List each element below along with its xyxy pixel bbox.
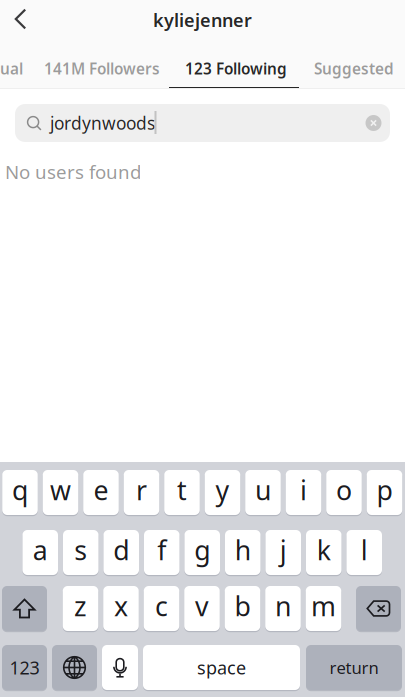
button[interactable]: m [306,586,341,632]
staticText: o [336,472,352,508]
button[interactable]: Next keyboard [52,645,97,691]
button[interactable]: j [265,530,301,576]
staticText: i [300,472,307,508]
button[interactable]: h [225,530,260,576]
staticText: q [12,472,28,508]
button[interactable]: 123 Following [185,45,287,88]
button[interactable]: k [306,530,341,576]
button[interactable]: g [184,530,220,576]
staticText: z [74,588,87,624]
staticText: p [376,472,392,508]
staticText: return [329,656,378,679]
button[interactable]: i [286,470,321,516]
button[interactable]: d [103,530,139,576]
staticText: space [197,655,246,680]
button[interactable]: e [83,470,119,516]
staticText: f [157,532,166,568]
staticText: m [311,588,336,624]
staticText: 123 [9,655,39,680]
staticText: t [177,472,187,508]
staticText: x [114,588,128,624]
staticText: Suggested [314,58,394,79]
button[interactable]: u [245,470,281,516]
button[interactable]: o [326,470,362,516]
staticText: w [50,472,71,508]
staticText: c [155,588,168,624]
button[interactable]: q [2,470,38,516]
staticText: b [234,588,250,624]
button[interactable]: Back [0,0,41,38]
button[interactable]: w [43,470,78,516]
button[interactable]: c [144,586,179,632]
button[interactable]: b [225,586,260,632]
button[interactable]: 141M Followers [44,45,160,88]
button[interactable]: l [346,530,382,576]
staticText: l [361,532,368,568]
staticText: d [113,532,129,568]
button[interactable]: r [124,470,159,516]
staticText: a [33,532,48,568]
staticText: y [215,472,229,508]
staticText: v [195,588,209,624]
staticText: kyliejenner [153,8,252,32]
button[interactable]: Suggested [314,45,398,88]
button[interactable]: Delete [356,586,401,632]
staticText: j [280,532,287,568]
button[interactable]: y [205,470,240,516]
button[interactable]: v [184,586,220,632]
button[interactable]: p [367,470,402,516]
staticText: No users found [5,159,141,184]
button[interactable]: Dictation [102,645,138,691]
staticText: r [136,472,147,508]
staticText: ual [0,58,23,79]
staticText: k [317,532,331,568]
staticText: s [74,532,87,568]
staticText: n [275,588,291,624]
button[interactable]: x [103,586,139,632]
staticText: e [93,472,108,508]
button[interactable]: z [63,586,98,632]
staticText: h [235,532,251,568]
button[interactable]: f [144,530,179,576]
staticText: u [255,472,271,508]
button[interactable]: n [265,586,301,632]
button[interactable]: Shift [2,586,47,632]
button[interactable]: space [143,645,300,691]
staticText: 141M Followers [44,58,160,79]
staticText: jordynwoods [50,111,155,135]
button[interactable]: t [164,470,200,516]
staticText: 123 Following [185,58,287,79]
button[interactable]: Numbers [2,645,47,691]
button[interactable]: ual [0,45,24,88]
button[interactable]: Clear text [365,115,381,131]
staticText: g [194,532,210,568]
button[interactable]: return [306,645,402,691]
button[interactable]: s [63,530,98,576]
button[interactable]: a [22,530,58,576]
